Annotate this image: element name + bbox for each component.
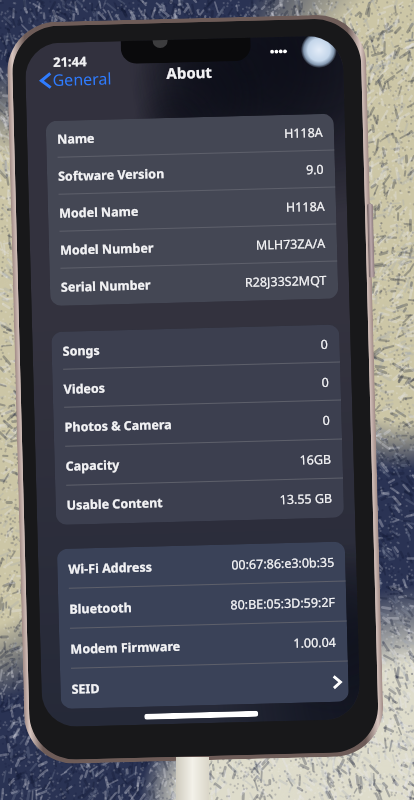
- staticText: Songs: [62, 342, 101, 360]
- staticText: R28J33S2MQT: [245, 272, 327, 291]
- staticText: Modem Firmware: [70, 638, 181, 658]
- staticText: Photos & Camera: [64, 416, 173, 436]
- staticText: 21:44: [53, 52, 87, 71]
- button[interactable]: Model Number: [49, 225, 337, 269]
- button[interactable]: Software Version: [47, 151, 335, 195]
- staticText: Capacity: [65, 456, 120, 475]
- button[interactable]: Model Name: [48, 188, 336, 232]
- staticText: 0: [320, 336, 329, 353]
- staticText: 9.0: [306, 161, 324, 178]
- staticText: 1.00.04: [293, 634, 337, 652]
- staticText: General: [52, 67, 112, 91]
- button[interactable]: Photos & Camera: [53, 400, 342, 447]
- staticText: Model Name: [59, 203, 139, 222]
- staticText: Model Number: [60, 239, 154, 259]
- staticText: About: [166, 62, 213, 83]
- button[interactable]: Wi-Fi Address: [57, 541, 346, 589]
- staticText: 16GB: [299, 451, 332, 469]
- staticText: Software Version: [58, 165, 165, 185]
- staticText: 13.55 GB: [279, 490, 333, 508]
- button[interactable]: Modem Firmware: [59, 621, 348, 669]
- staticText: SEID: [71, 680, 100, 698]
- staticText: H118A: [286, 198, 325, 216]
- staticText: Videos: [63, 380, 106, 398]
- button[interactable]: Serial Number: [49, 261, 338, 306]
- staticText: Name: [57, 130, 95, 148]
- button[interactable]: Usable Content: [55, 478, 344, 525]
- button[interactable]: Capacity: [54, 439, 343, 486]
- other: Power button: [367, 204, 375, 278]
- staticText: 80:BE:05:3D:59:2F: [230, 594, 336, 613]
- other: SEID details: [332, 676, 342, 689]
- staticText: Bluetooth: [69, 599, 133, 618]
- staticText: 0: [322, 412, 331, 429]
- staticText: MLH73ZA/A: [256, 235, 326, 254]
- staticText: 0: [321, 374, 330, 391]
- staticText: Wi-Fi Address: [68, 558, 153, 578]
- staticText: H118A: [284, 124, 323, 142]
- button[interactable]: Name: [46, 114, 334, 158]
- staticText: 00:67:86:e3:0b:35: [231, 554, 334, 573]
- staticText: Serial Number: [61, 276, 151, 296]
- button[interactable]: SEID: [60, 661, 349, 709]
- button[interactable]: Bluetooth: [58, 581, 347, 629]
- button[interactable]: Songs: [51, 324, 340, 370]
- button[interactable]: General: [39, 67, 112, 91]
- staticText: Usable Content: [66, 494, 163, 514]
- button[interactable]: Videos: [52, 362, 341, 408]
